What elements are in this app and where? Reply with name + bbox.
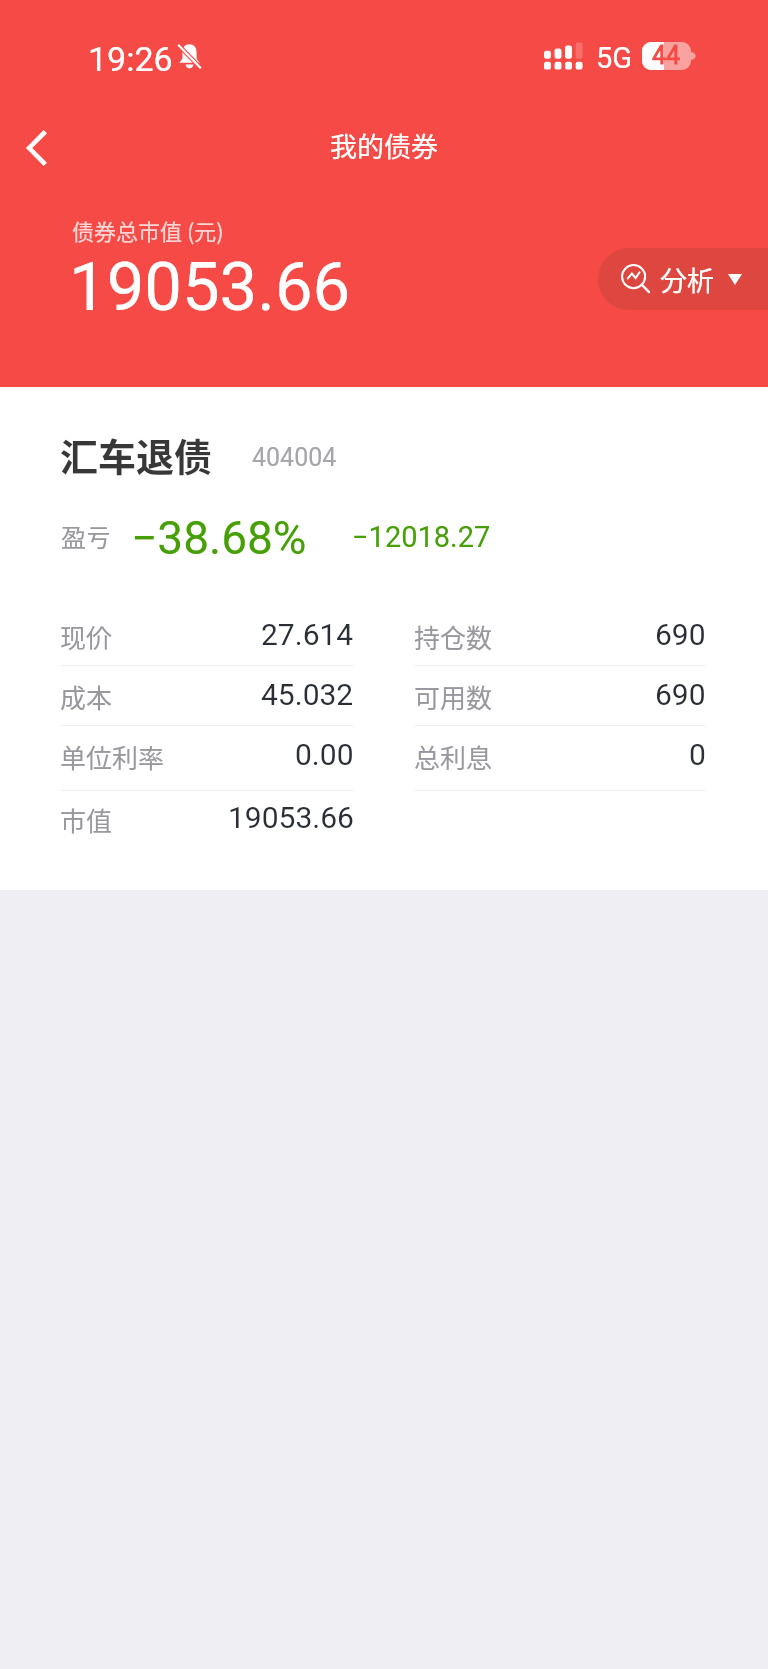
staticText: 我的债券 bbox=[330, 126, 438, 165]
staticText: 单位利率 bbox=[60, 738, 165, 776]
staticText: 27.614 bbox=[261, 617, 354, 652]
button[interactable]: 现价 bbox=[60, 607, 354, 667]
staticText: −38.68% bbox=[131, 511, 307, 565]
staticText: 持仓数 bbox=[414, 618, 493, 656]
staticText: 0 bbox=[689, 737, 706, 772]
staticText: −12018.27 bbox=[352, 520, 491, 554]
staticText: 债券总市值 (元) bbox=[72, 214, 224, 246]
button[interactable]: 成本 bbox=[60, 667, 354, 727]
staticText: 19:26 bbox=[88, 39, 173, 79]
staticText: 汇车退债 bbox=[60, 427, 213, 482]
staticText: 45.032 bbox=[261, 677, 354, 712]
button[interactable]: 单位利率 bbox=[60, 727, 354, 787]
button[interactable]: 市值 bbox=[60, 790, 354, 850]
staticText: 0.00 bbox=[295, 737, 354, 772]
staticText: 现价 bbox=[60, 618, 113, 656]
staticText: 690 bbox=[655, 677, 706, 712]
staticText: 19053.66 bbox=[228, 800, 354, 835]
staticText: 盈亏 bbox=[61, 518, 112, 554]
staticText: 19053.66 bbox=[69, 248, 351, 327]
button[interactable]: Back bbox=[0, 100, 80, 196]
staticText: 分析 bbox=[660, 260, 714, 299]
staticText: 总利息 bbox=[414, 738, 493, 776]
staticText: 市值 bbox=[60, 801, 113, 839]
staticText: 690 bbox=[655, 617, 706, 652]
button[interactable]: 可用数 bbox=[414, 667, 706, 727]
staticText: 可用数 bbox=[414, 678, 493, 716]
staticText: 成本 bbox=[60, 678, 113, 716]
staticText: 44 bbox=[652, 42, 681, 69]
staticText: 404004 bbox=[252, 443, 337, 472]
button[interactable]: 持仓数 bbox=[414, 607, 706, 667]
button[interactable]: 总利息 bbox=[414, 727, 706, 787]
button[interactable]: 分析 bbox=[598, 248, 768, 310]
staticText: 5G bbox=[596, 41, 633, 75]
